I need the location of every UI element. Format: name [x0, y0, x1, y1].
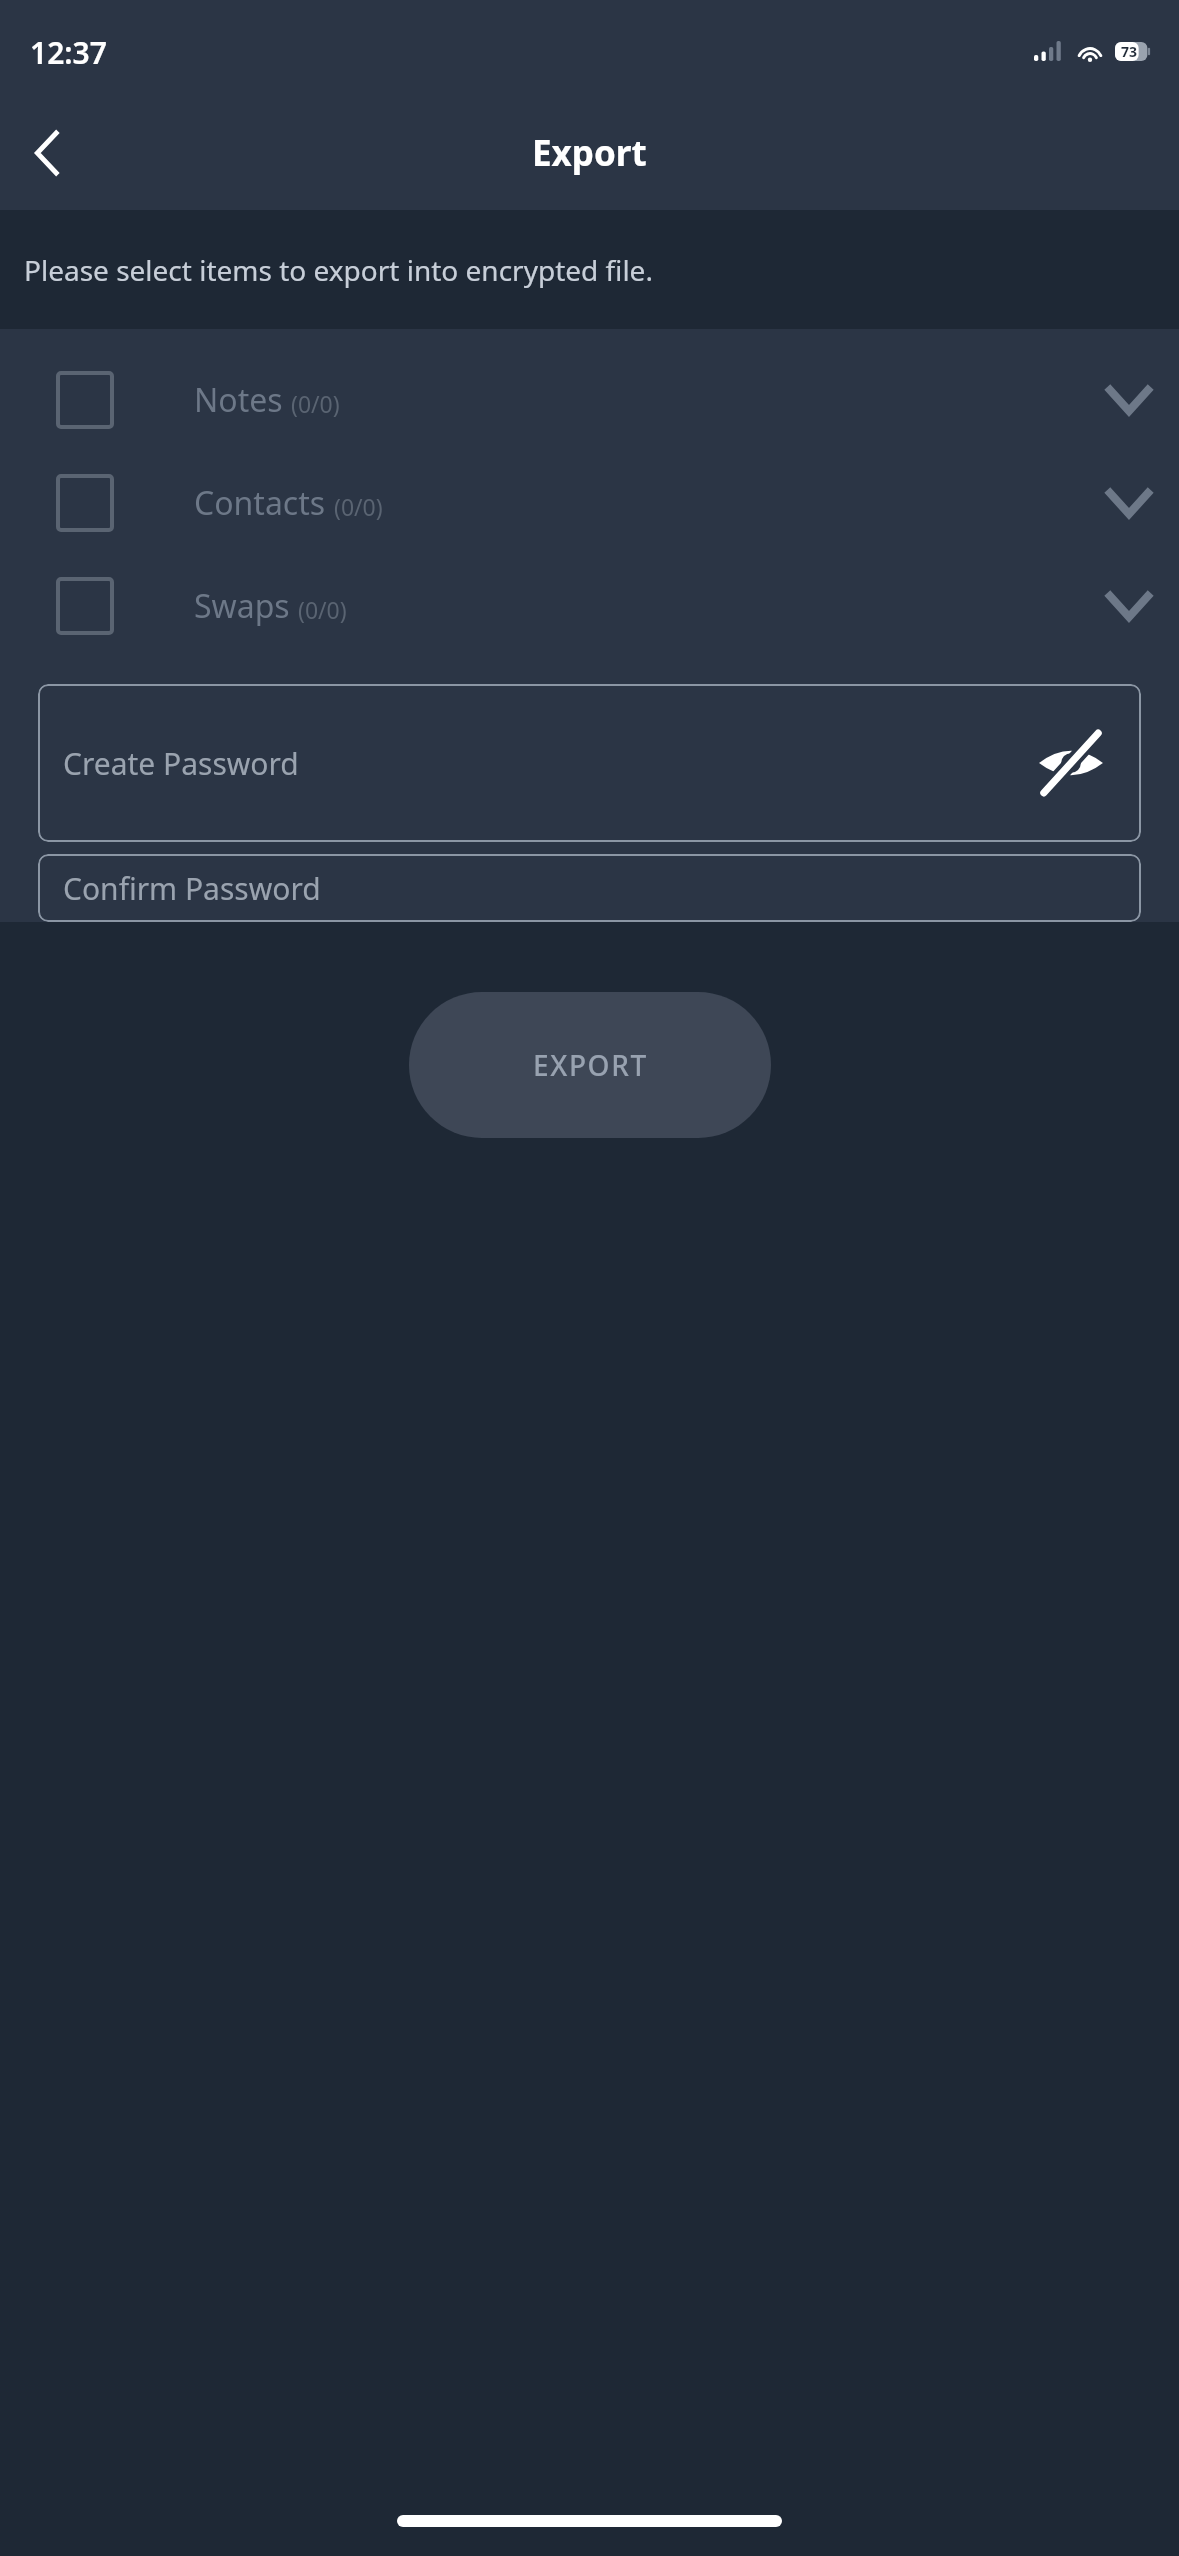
- staticText: Contacts: [194, 481, 326, 525]
- staticText: Swaps: [194, 584, 290, 628]
- staticText: 12:37: [30, 32, 107, 73]
- staticText: (0/0): [291, 388, 340, 419]
- button[interactable]: EXPORT: [409, 992, 771, 1138]
- button[interactable]: Confirm Password: [38, 854, 1141, 922]
- button[interactable]: Contacts: [0, 451, 1179, 554]
- button[interactable]: Toggle password visibility: [1031, 723, 1111, 803]
- staticText: (0/0): [334, 491, 383, 522]
- staticText: Notes: [194, 378, 283, 422]
- button[interactable]: Expand Contacts: [1081, 455, 1177, 551]
- button[interactable]: Expand Notes: [1081, 352, 1177, 448]
- staticText: Please select items to export into encry…: [24, 251, 653, 289]
- button[interactable]: Expand Swaps: [1081, 558, 1177, 654]
- button[interactable]: Notes: [0, 348, 1179, 451]
- button[interactable]: Create Password: [38, 684, 1141, 842]
- staticText: Export: [532, 129, 647, 177]
- staticText: 73: [1121, 42, 1138, 61]
- button[interactable]: Swaps: [0, 554, 1179, 657]
- staticText: Confirm Password: [63, 868, 321, 909]
- staticText: (0/0): [298, 594, 347, 625]
- staticText: Create Password: [63, 743, 299, 784]
- staticText: EXPORT: [533, 1046, 648, 1084]
- button[interactable]: Back: [10, 116, 84, 190]
